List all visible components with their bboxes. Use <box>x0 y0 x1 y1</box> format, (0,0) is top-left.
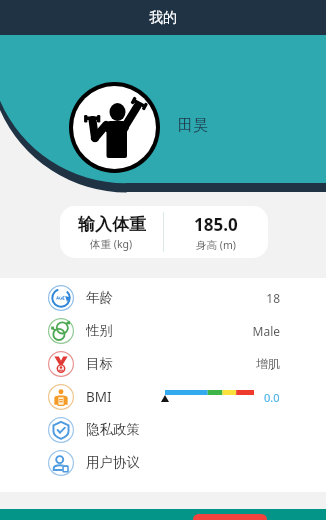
button[interactable]: 年龄 <box>0 281 326 314</box>
button[interactable]: 目标 <box>0 347 326 380</box>
staticText: 我的 <box>149 9 177 27</box>
staticText: 性别 <box>86 322 113 339</box>
staticText: 体重 (kg) <box>90 237 133 251</box>
button[interactable]: Start workout <box>193 514 267 520</box>
button[interactable]: 185.0 <box>164 206 268 258</box>
button[interactable]: 输入体重 <box>60 206 163 258</box>
staticText: 18 <box>180 290 280 306</box>
button[interactable]: BMI <box>0 380 326 413</box>
staticText: 田昊 <box>178 116 208 135</box>
staticText: 年龄 <box>86 289 113 306</box>
staticText: 增肌 <box>180 356 280 371</box>
button[interactable]: 隐私政策 <box>0 413 326 446</box>
staticText: BMI <box>86 388 112 406</box>
staticText: 身高 (m) <box>196 238 236 252</box>
staticText: 185.0 <box>194 213 238 236</box>
staticText: 输入体重 <box>78 214 146 235</box>
staticText: 目标 <box>86 355 113 372</box>
button[interactable]: 性别 <box>0 314 326 347</box>
staticText: 隐私政策 <box>86 421 140 438</box>
button[interactable]: 用户协议 <box>0 446 326 479</box>
staticText: 用户协议 <box>86 454 140 471</box>
staticText: Male <box>180 323 280 339</box>
staticText: 0.0 <box>264 390 280 405</box>
